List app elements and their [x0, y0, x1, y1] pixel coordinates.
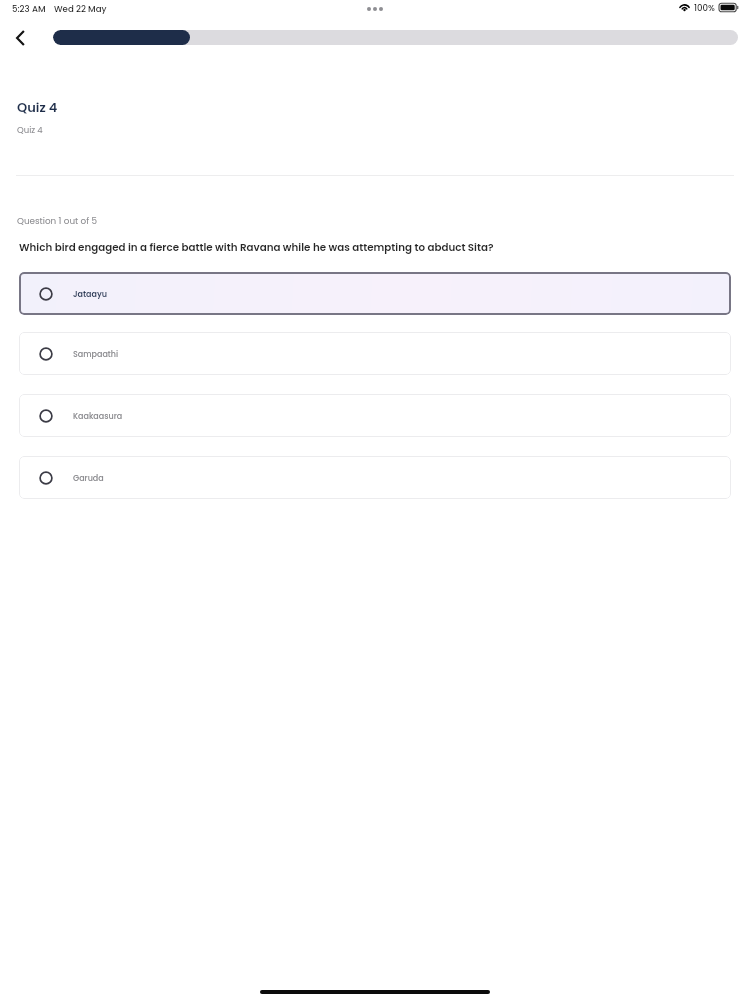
staticText: Which bird engaged in a fierce battle wi…: [19, 240, 494, 254]
staticText: Kaakaasura: [73, 411, 123, 422]
staticText: Garuda: [73, 473, 104, 484]
button[interactable]: Back: [6, 24, 34, 52]
staticText: Quiz 4: [17, 124, 43, 136]
staticText: 100%: [694, 2, 715, 14]
staticText: Wed 22 May: [54, 3, 107, 15]
button[interactable]: Kaakaasura: [19, 394, 731, 437]
button[interactable]: Jataayu: [19, 272, 731, 315]
staticText: 5:23 AM: [12, 3, 46, 15]
staticText: Jataayu: [73, 289, 108, 300]
button[interactable]: Garuda: [19, 456, 731, 499]
staticText: Sampaathi: [73, 349, 119, 360]
button[interactable]: Sampaathi: [19, 332, 731, 375]
staticText: Quiz 4: [17, 98, 58, 116]
staticText: Question 1 out of 5: [17, 215, 97, 227]
